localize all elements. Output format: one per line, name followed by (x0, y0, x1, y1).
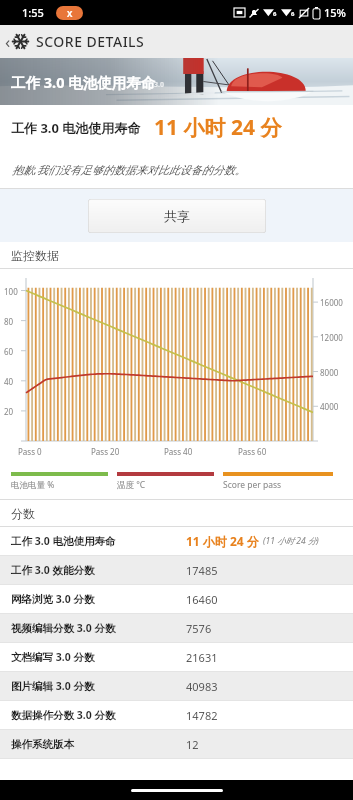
button[interactable]: ‹ (0, 25, 353, 58)
staticText: 40983 (186, 679, 218, 694)
staticText: 工作 3.0 电池使用寿命 (11, 119, 141, 137)
staticText: 100 (4, 286, 18, 297)
staticText: 60 (4, 346, 14, 357)
staticText: 6 (273, 10, 277, 18)
staticText: Pass 40 (164, 446, 193, 457)
button[interactable]: 工作 3.0 电池使用寿命 (0, 527, 353, 555)
staticText: ‹ (5, 30, 11, 53)
button[interactable]: 视频编辑分数 3.0 分数 (0, 614, 353, 642)
staticText: 数据操作分数 3.0 分数 (11, 708, 116, 722)
staticText: 8000 (320, 367, 339, 378)
button[interactable]: 网络浏览 3.0 分数 (0, 585, 353, 613)
staticText: 16000 (320, 297, 343, 308)
staticText: 工作 3.0 效能分数 (11, 563, 95, 577)
button[interactable]: 共享 (88, 199, 266, 233)
staticText: (11 小时 24 分) (263, 535, 319, 547)
staticText: 分数 (11, 506, 35, 521)
staticText: 3.0 (154, 80, 164, 90)
staticText: 16460 (186, 592, 218, 607)
staticText: 12000 (320, 332, 343, 343)
staticText: 视频编辑分数 3.0 分数 (11, 621, 116, 635)
staticText: X (67, 8, 73, 19)
button[interactable]: 文档编写 3.0 分数 (0, 643, 353, 671)
staticText: SCORE DETAILS (36, 32, 145, 51)
staticText: 14782 (186, 708, 218, 723)
staticText: 40 (4, 376, 14, 387)
staticText: 15% (324, 5, 346, 20)
staticText: Pass 0 (18, 446, 42, 457)
staticText: 12 (186, 737, 199, 752)
staticText: 电池电量 % (11, 479, 55, 491)
staticText: 共享 (164, 208, 190, 224)
staticText: 操作系统版本 (11, 738, 74, 751)
staticText: Pass 60 (238, 446, 267, 457)
staticText: 17485 (186, 563, 218, 578)
button[interactable]: 操作系统版本 (0, 730, 353, 758)
staticText: Pass 20 (91, 446, 120, 457)
staticText: 4000 (320, 401, 339, 412)
staticText: 抱歉,我们没有足够的数据来对比此设备的分数。 (12, 162, 246, 177)
staticText: 80 (4, 316, 14, 327)
button[interactable]: 工作 3.0 效能分数 (0, 556, 353, 584)
button[interactable]: Home (131, 789, 223, 792)
staticText: 文档编写 3.0 分数 (11, 650, 95, 664)
staticText: 7576 (186, 621, 212, 636)
staticText: 工作 3.0 电池使用寿命 (11, 534, 116, 548)
button[interactable]: 图片编辑 3.0 分数 (0, 672, 353, 700)
staticText: 温度 °C (117, 479, 146, 491)
button[interactable]: 数据操作分数 3.0 分数 (0, 701, 353, 729)
staticText: 监控数据 (11, 248, 59, 263)
staticText: Score per pass (223, 479, 282, 491)
staticText: 20 (4, 406, 14, 417)
staticText: 11 小时 24 分 (154, 113, 282, 142)
staticText: 6 (291, 10, 295, 18)
staticText: 21631 (186, 650, 218, 665)
staticText: 图片编辑 3.0 分数 (11, 679, 95, 693)
staticText: 11 小时 24 分 (186, 533, 259, 549)
other: PCMark (12, 33, 29, 50)
staticText: 网络浏览 3.0 分数 (11, 592, 95, 606)
staticText: 1:55 (22, 5, 44, 20)
staticText: 工作 3.0 电池使用寿命 (11, 72, 156, 92)
